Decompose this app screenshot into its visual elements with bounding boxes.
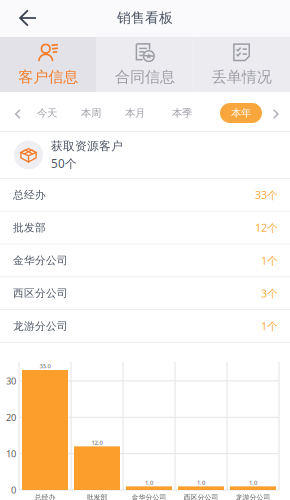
- button[interactable]: 丢单情况: [193, 37, 290, 92]
- staticText: 33个: [255, 188, 278, 202]
- button[interactable]: 本季: [169, 105, 195, 121]
- staticText: 本年: [231, 106, 251, 119]
- staticText: 30: [6, 375, 16, 387]
- staticText: 12.0: [91, 438, 102, 446]
- staticText: 本周: [81, 106, 101, 119]
- button[interactable]: 龙游分公司: [0, 310, 290, 343]
- staticText: 1.0: [145, 478, 153, 486]
- button[interactable]: 今天: [34, 105, 60, 121]
- staticText: 12个: [255, 220, 278, 235]
- staticText: 0: [11, 484, 16, 496]
- button[interactable]: Back: [0, 0, 47, 37]
- button[interactable]: 批发部: [0, 212, 290, 245]
- staticText: 龙游分公司: [235, 493, 270, 500]
- staticText: 33.0: [39, 362, 50, 370]
- button[interactable]: 本年: [220, 103, 262, 123]
- staticText: 1个: [261, 319, 278, 333]
- staticText: 本季: [172, 106, 192, 119]
- button[interactable]: 客户信息: [0, 37, 97, 92]
- staticText: 总经办: [34, 493, 55, 500]
- button[interactable]: Previous period: [10, 106, 26, 122]
- staticText: 金华分公司: [131, 493, 166, 500]
- staticText: 金华分公司: [13, 254, 68, 267]
- staticText: 50个: [51, 155, 77, 171]
- staticText: 1.0: [197, 478, 205, 486]
- staticText: 合同信息: [115, 67, 175, 86]
- button[interactable]: 总经办: [0, 179, 290, 212]
- staticText: 总经办: [13, 188, 46, 202]
- staticText: 西区分公司: [13, 287, 68, 300]
- button[interactable]: Next period: [268, 106, 284, 122]
- staticText: 西区分公司: [183, 493, 218, 500]
- staticText: 批发部: [86, 493, 107, 500]
- staticText: 销售看板: [117, 9, 173, 27]
- staticText: 3个: [261, 286, 278, 300]
- staticText: 20: [6, 411, 16, 424]
- button[interactable]: 金华分公司: [0, 245, 290, 277]
- staticText: 批发部: [13, 221, 46, 234]
- button[interactable]: 本月: [122, 105, 148, 121]
- staticText: 10: [6, 447, 16, 460]
- staticText: 龙游分公司: [13, 319, 68, 333]
- staticText: 丢单情况: [212, 67, 272, 86]
- staticText: 获取资源客户: [51, 139, 123, 153]
- staticText: 1.0: [249, 478, 257, 486]
- button[interactable]: 本周: [78, 105, 104, 121]
- button[interactable]: 合同信息: [97, 37, 193, 92]
- staticText: 1个: [261, 253, 278, 268]
- staticText: 客户信息: [18, 67, 78, 86]
- button[interactable]: 西区分公司: [0, 277, 290, 310]
- staticText: 本月: [125, 106, 145, 119]
- staticText: 今天: [37, 106, 57, 119]
